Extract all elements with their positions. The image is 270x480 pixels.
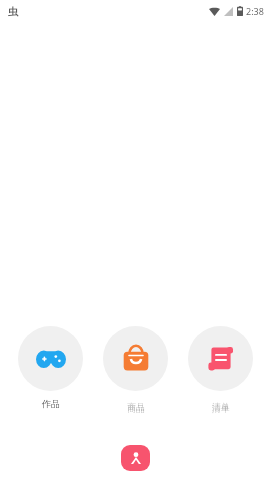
staticText: 商品 [127, 401, 145, 412]
button[interactable]: 作品 [18, 326, 83, 409]
staticText: 商品 [127, 403, 145, 414]
staticText: 作品 [42, 398, 60, 409]
staticText: 清单 [212, 401, 230, 412]
staticText: 清单 [212, 403, 230, 414]
button[interactable]: 商品 [103, 326, 168, 414]
button[interactable]: 清单 [188, 326, 253, 414]
staticText: 2:38 [246, 5, 264, 17]
button[interactable]: Profile [121, 445, 150, 471]
staticText: 虫 [8, 5, 18, 18]
